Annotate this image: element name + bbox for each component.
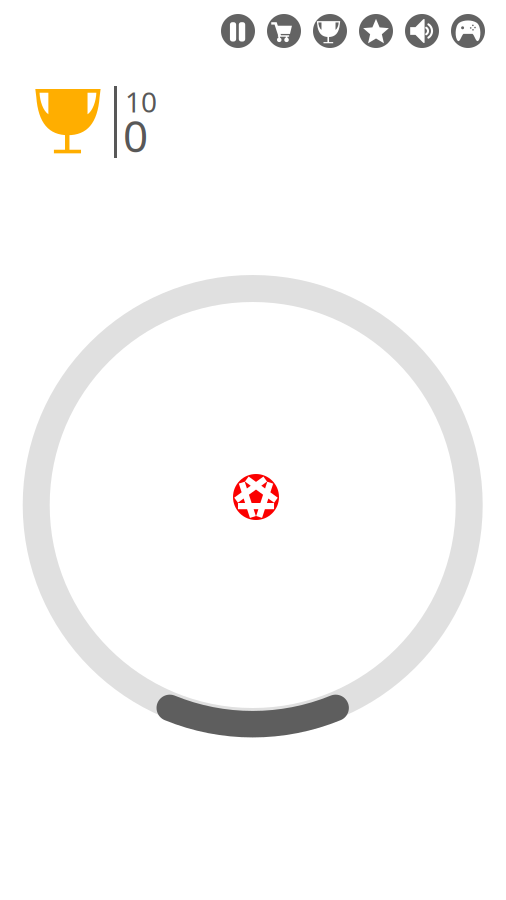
button[interactable]: Rate	[359, 14, 393, 48]
staticText: 0	[123, 106, 148, 164]
button[interactable]: Game Center	[451, 14, 485, 48]
button[interactable]: Pause	[221, 14, 255, 48]
button[interactable]: Shop	[267, 14, 301, 48]
button[interactable]: Sound	[405, 14, 439, 48]
button[interactable]: Leaderboard	[313, 14, 347, 48]
staticText: 10	[125, 83, 157, 120]
